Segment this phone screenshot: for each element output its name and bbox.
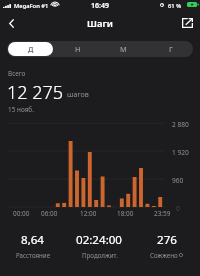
staticText: 12:00 [80, 209, 97, 218]
button[interactable]: 276 [133, 232, 200, 259]
staticText: Сожжено [150, 251, 178, 259]
staticText: 8,64 [21, 232, 45, 248]
staticText: Расстояние [16, 251, 51, 259]
button[interactable]: Н [55, 42, 100, 56]
staticText: 0 [176, 204, 180, 213]
staticText: 61 % [168, 2, 182, 10]
button[interactable]: Д [8, 42, 53, 56]
staticText: Н [75, 44, 81, 54]
staticText: Всего [8, 69, 26, 78]
staticText: 1 920 [172, 148, 189, 157]
button[interactable]: 8,64 [0, 232, 66, 259]
staticText: Продолжит. [82, 251, 118, 259]
staticText: 00:00 [13, 209, 30, 218]
staticText: 23:59 [154, 209, 171, 218]
staticText: Д [28, 44, 34, 54]
staticText: 02:24:00 [76, 232, 123, 248]
button[interactable]: 02:24:00 [66, 232, 133, 259]
staticText: М [120, 44, 127, 54]
staticText: 06:00 [41, 209, 58, 218]
staticText: шагов [67, 89, 89, 99]
staticText: 2 880 [172, 120, 189, 129]
staticText: MegaFon #1 [14, 2, 49, 10]
staticText: 960 [172, 176, 184, 185]
button[interactable]: Back [1, 12, 21, 34]
staticText: 12 275 [7, 80, 64, 105]
staticText: Г [169, 44, 173, 54]
button[interactable]: Open in new window [177, 12, 198, 34]
staticText: 15 нояб. [8, 105, 34, 114]
button[interactable]: Г [148, 42, 193, 56]
staticText: 16:49 [91, 1, 109, 11]
staticText: Шаги [0, 17, 200, 30]
staticText: 18:00 [117, 209, 134, 218]
button[interactable]: М [101, 42, 146, 56]
staticText: 276 [157, 232, 177, 248]
